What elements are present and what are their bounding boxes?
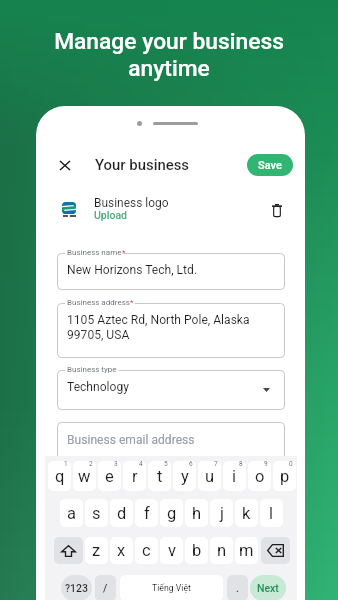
button[interactable]: f bbox=[135, 499, 158, 527]
staticText: e bbox=[105, 467, 114, 486]
staticText: 6 bbox=[189, 461, 193, 468]
staticText: t bbox=[157, 467, 163, 486]
staticText: m bbox=[239, 541, 254, 560]
staticText: Technology bbox=[67, 380, 129, 394]
button[interactable]: e bbox=[98, 461, 121, 491]
staticText: 5 bbox=[164, 461, 168, 468]
staticText: Your business bbox=[95, 156, 190, 173]
staticText: n bbox=[217, 541, 227, 560]
staticText: 0 bbox=[289, 461, 293, 468]
staticText: c bbox=[142, 541, 151, 560]
staticText: k bbox=[242, 504, 251, 523]
staticText: o bbox=[255, 467, 265, 486]
staticText: Manage your business anytime bbox=[54, 28, 284, 82]
button[interactable]: Business name bbox=[57, 253, 285, 290]
staticText: ?123 bbox=[65, 582, 89, 594]
button[interactable]: j bbox=[210, 499, 233, 527]
staticText: f bbox=[144, 504, 150, 523]
button[interactable]: l bbox=[260, 499, 283, 527]
staticText: p bbox=[280, 467, 290, 486]
staticText: y bbox=[181, 467, 189, 486]
button[interactable]: v bbox=[160, 537, 183, 564]
button[interactable]: ?123 bbox=[61, 575, 92, 600]
staticText: l bbox=[269, 504, 274, 523]
staticText: q bbox=[55, 467, 65, 486]
button[interactable]: i bbox=[223, 461, 246, 491]
button[interactable]: m bbox=[235, 537, 258, 564]
button[interactable]: q bbox=[48, 461, 71, 491]
staticText: z bbox=[92, 541, 101, 560]
button[interactable]: k bbox=[235, 499, 258, 527]
button[interactable]: Save bbox=[247, 154, 293, 176]
button[interactable]: d bbox=[110, 499, 133, 527]
staticText: w bbox=[78, 467, 91, 486]
staticText: i bbox=[232, 467, 237, 486]
button[interactable]: . bbox=[227, 575, 248, 600]
button[interactable]: Business address bbox=[57, 303, 285, 358]
staticText: Business email address bbox=[67, 433, 195, 447]
staticText: x bbox=[117, 541, 126, 560]
button[interactable]: / bbox=[95, 575, 116, 600]
button[interactable]: o bbox=[248, 461, 271, 491]
button[interactable]: n bbox=[210, 537, 233, 564]
button[interactable]: x bbox=[110, 537, 133, 564]
staticText: 3 bbox=[114, 461, 118, 468]
staticText: . bbox=[236, 582, 240, 595]
button[interactable]: Business type bbox=[57, 370, 285, 410]
staticText: 1105 Aztec Rd, North Pole, Alaska 99705,… bbox=[67, 313, 250, 342]
staticText: 7 bbox=[214, 461, 218, 468]
staticText: 4 bbox=[139, 461, 143, 468]
staticText: Business address bbox=[67, 298, 130, 307]
staticText: 8 bbox=[239, 461, 243, 468]
button[interactable]: z bbox=[85, 537, 108, 564]
button[interactable]: Tiếng Việt bbox=[120, 575, 223, 600]
staticText: 1 bbox=[64, 461, 68, 468]
button[interactable]: t bbox=[148, 461, 171, 491]
button[interactable]: b bbox=[185, 537, 208, 564]
staticText: v bbox=[168, 541, 176, 560]
staticText: j bbox=[220, 504, 224, 523]
button[interactable]: Close bbox=[54, 154, 76, 176]
staticText: a bbox=[67, 504, 76, 523]
staticText: 2 bbox=[89, 461, 93, 468]
staticText: b bbox=[192, 541, 202, 560]
staticText: * bbox=[122, 248, 126, 257]
button[interactable]: s bbox=[85, 499, 108, 527]
staticText: * bbox=[130, 298, 134, 307]
staticText: u bbox=[205, 467, 215, 486]
staticText: r bbox=[132, 467, 138, 486]
button[interactable]: Upload bbox=[94, 209, 127, 221]
staticText: Next bbox=[257, 582, 279, 594]
button[interactable]: c bbox=[135, 537, 158, 564]
staticText: h bbox=[192, 504, 202, 523]
staticText: Tiếng Việt bbox=[152, 583, 191, 593]
button[interactable]: Delete logo bbox=[266, 199, 288, 221]
staticText: New Horizons Tech, Ltd. bbox=[67, 263, 198, 277]
button[interactable]: p bbox=[273, 461, 296, 491]
staticText: g bbox=[167, 504, 177, 523]
staticText: Business name bbox=[67, 248, 122, 257]
button[interactable]: w bbox=[73, 461, 96, 491]
staticText: Business logo bbox=[94, 196, 169, 210]
staticText: 9 bbox=[264, 461, 268, 468]
button[interactable]: Shift bbox=[54, 537, 83, 564]
staticText: Save bbox=[258, 159, 282, 172]
button[interactable]: h bbox=[185, 499, 208, 527]
button[interactable]: Business email address bbox=[57, 422, 285, 462]
button[interactable]: a bbox=[60, 499, 83, 527]
button[interactable]: Backspace bbox=[261, 537, 290, 564]
button[interactable]: g bbox=[160, 499, 183, 527]
staticText: / bbox=[103, 582, 108, 595]
button[interactable]: r bbox=[123, 461, 146, 491]
button[interactable]: Next bbox=[250, 575, 286, 600]
button[interactable]: u bbox=[198, 461, 221, 491]
button[interactable]: y bbox=[173, 461, 196, 491]
staticText: s bbox=[92, 504, 101, 523]
staticText: d bbox=[117, 504, 127, 523]
staticText: Business type bbox=[67, 365, 117, 374]
